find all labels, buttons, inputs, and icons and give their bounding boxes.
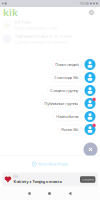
staticText: Kobiety z Twojego miasta (13, 179, 61, 184)
button[interactable]: Settings (86, 7, 97, 18)
staticText: Создать группу (50, 88, 78, 93)
staticText: Meet New People (38, 161, 68, 167)
button[interactable]: Поиск людей (0, 58, 100, 71)
button[interactable]: Найти ботов (0, 110, 100, 123)
staticText: 15:08 (80, 1, 89, 6)
button[interactable]: Recents (21, 187, 37, 200)
staticText: kik (4, 22, 9, 28)
staticText: Добро пожаловать в Kik! (14, 25, 57, 31)
button[interactable]: Meet New People (0, 156, 100, 172)
button[interactable]: Ответить (80, 176, 95, 183)
staticText: Подтвердите адрес эл. почты (14, 33, 71, 39)
button[interactable]: Создать группу (0, 84, 100, 97)
staticText: Ответить (82, 178, 93, 181)
staticText: Поиск людей (55, 62, 78, 67)
staticText: kik (3, 6, 18, 19)
button[interactable]: Back (62, 187, 78, 200)
staticText: Найти ботов (56, 114, 78, 119)
staticText: Сделайте аккаунт безопаснее (14, 39, 67, 45)
staticText: Скан кода Kik (54, 75, 78, 80)
button[interactable]: Home (41, 187, 57, 200)
button[interactable]: Подтвердите адрес эл. почты (0, 32, 100, 46)
staticText: Kik (13, 175, 17, 178)
staticText: Рынок Kik (61, 127, 78, 132)
staticText: Kik Team (14, 19, 31, 25)
button[interactable]: Рынок Kik (0, 123, 100, 136)
button[interactable]: Close menu (82, 141, 98, 157)
button[interactable]: Скан кода Kik (0, 71, 100, 84)
button[interactable]: Публичные группы (0, 97, 100, 110)
staticText: Публичные группы (44, 101, 78, 106)
